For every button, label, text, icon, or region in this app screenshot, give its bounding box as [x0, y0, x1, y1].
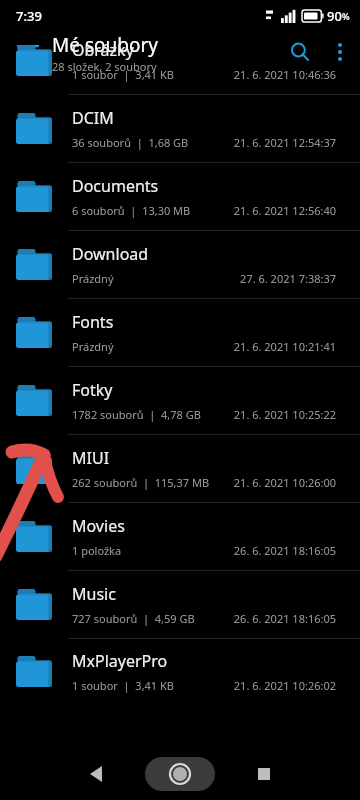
staticText: 21. 6. 2021 12:56:40: [195, 203, 336, 218]
staticText: 21. 6. 2021 10:46:36: [178, 67, 336, 82]
staticText: 36 souborů | 1,68 GB: [72, 135, 189, 150]
staticText: 6 souborů | 13,30 MB: [72, 203, 191, 218]
staticText: 262 souborů | 115,37 MB: [72, 475, 210, 490]
button[interactable]: DCIM: [0, 94, 360, 162]
staticText: Fotky: [72, 379, 113, 401]
button[interactable]: Obrázky: [0, 26, 360, 94]
staticText: 26. 6. 2021 18:16:05: [126, 543, 336, 558]
button[interactable]: MIUI: [0, 434, 360, 502]
staticText: 27. 6. 2021 7:38:37: [118, 271, 336, 286]
staticText: 1 soubor | 3,41 KB: [72, 678, 174, 693]
staticText: 21. 6. 2021 10:26:00: [214, 475, 336, 490]
button[interactable]: More options: [320, 32, 360, 72]
button[interactable]: Download: [0, 230, 360, 298]
staticText: Fonts: [72, 311, 114, 333]
staticText: Obrázky: [72, 39, 134, 61]
staticText: 28 složek, 2 soubory: [52, 59, 157, 72]
button[interactable]: Music: [0, 570, 360, 638]
staticText: MxPlayerPro: [72, 650, 168, 672]
staticText: Music: [72, 583, 116, 605]
staticText: 1 položka: [72, 543, 122, 558]
staticText: Prázdný: [72, 339, 114, 354]
staticText: Mé soubory: [52, 32, 158, 58]
staticText: %: [342, 10, 350, 22]
staticText: 21. 6. 2021 10:21:41: [118, 339, 336, 354]
button[interactable]: Fonts: [0, 298, 360, 366]
staticText: 727 souborů | 4,59 GB: [72, 611, 195, 626]
staticText: 7:39: [16, 7, 42, 25]
staticText: 1 soubor | 3,41 KB: [72, 67, 174, 82]
staticText: 21. 6. 2021 12:54:37: [193, 135, 336, 150]
staticText: Movies: [72, 515, 125, 537]
staticText: DCIM: [72, 107, 114, 129]
staticText: 21. 6. 2021 10:25:22: [205, 407, 336, 422]
staticText: Prázdný: [72, 271, 114, 286]
button[interactable]: Back: [76, 754, 116, 794]
button[interactable]: Fotky: [0, 366, 360, 434]
button[interactable]: MxPlayerPro: [0, 638, 360, 704]
button[interactable]: Movies: [0, 502, 360, 570]
staticText: 21. 6. 2021 10:26:02: [178, 678, 336, 693]
staticText: Download: [72, 243, 149, 265]
button[interactable]: Recent apps: [244, 754, 284, 794]
button[interactable]: Home: [145, 757, 215, 791]
button[interactable]: Search: [280, 32, 320, 72]
staticText: MIUI: [72, 447, 110, 469]
staticText: 1782 souborů | 4,78 GB: [72, 407, 201, 422]
button[interactable]: Documents: [0, 162, 360, 230]
staticText: 90: [327, 7, 342, 25]
button[interactable]: Menu: [10, 34, 46, 70]
staticText: Documents: [72, 175, 159, 197]
staticText: 26. 6. 2021 18:16:05: [199, 611, 336, 626]
